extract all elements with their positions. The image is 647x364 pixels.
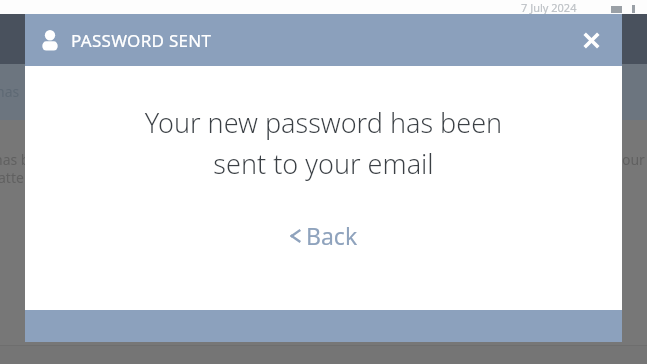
staticText: has: [0, 82, 20, 101]
staticText: PASSWORD SENT: [71, 29, 212, 52]
staticText: our i: [622, 150, 647, 169]
staticText: Your new password has been sent to your …: [25, 104, 622, 182]
button[interactable]: Close: [574, 23, 608, 57]
button[interactable]: Back: [280, 216, 368, 255]
staticText: 7 July 2024: [521, 0, 577, 14]
staticText: has b: [0, 150, 30, 169]
staticText: atte: [0, 168, 24, 187]
staticText: Back: [306, 220, 358, 251]
